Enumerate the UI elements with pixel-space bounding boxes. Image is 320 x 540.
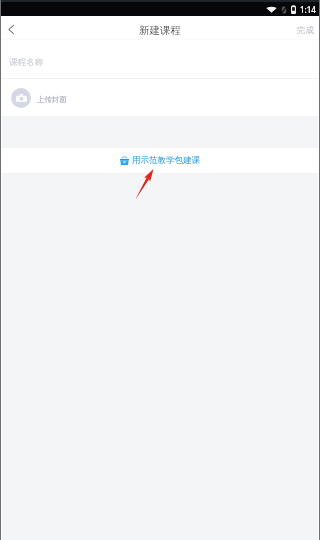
button[interactable]: 用示范教学包建课 xyxy=(0,148,320,173)
staticText: 上传封面 xyxy=(37,95,67,104)
staticText: 用示范教学包建课 xyxy=(132,155,200,166)
button[interactable]: 上传封面 xyxy=(0,79,320,116)
staticText: 新建课程 xyxy=(139,24,181,37)
button[interactable]: 完成 xyxy=(287,16,320,39)
staticText: 1:14 xyxy=(300,4,316,15)
button[interactable]: 课程名称 xyxy=(0,40,320,78)
button[interactable]: Back xyxy=(0,16,32,39)
staticText: 课程名称 xyxy=(9,57,43,68)
staticText: 完成 xyxy=(297,25,314,36)
